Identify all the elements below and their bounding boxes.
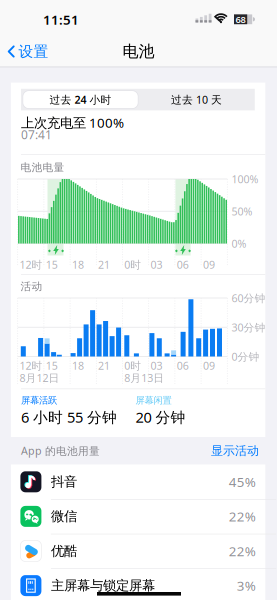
staticText: 0分钟 — [231, 349, 259, 364]
button[interactable]: 设置 — [7, 36, 59, 66]
staticText: 12时 — [19, 358, 42, 373]
staticText: 15 — [46, 257, 58, 272]
staticText: 电池电量 — [20, 161, 64, 174]
staticText: 07:41 — [21, 127, 52, 143]
staticText: 09 — [203, 358, 215, 373]
staticText: 18 — [72, 257, 84, 272]
staticText: 09 — [203, 257, 215, 272]
button[interactable]: 抖音 — [11, 464, 265, 499]
button[interactable]: 显示活动 — [179, 442, 259, 460]
staticText: 6 小时 55 分钟 — [21, 407, 117, 427]
staticText: 60分钟 — [231, 291, 265, 305]
staticText: 20 分钟 — [135, 407, 185, 427]
staticText: 主屏幕与锁定屏幕 — [51, 577, 155, 594]
staticText: 过去 10 天 — [171, 92, 222, 107]
staticText: 上次充电至 100% — [21, 114, 124, 131]
button[interactable]: 主屏幕与锁定屏幕 — [11, 568, 265, 600]
staticText: 优酷 — [51, 543, 77, 559]
staticText: 68 — [235, 13, 245, 25]
staticText: 11:51 — [43, 11, 79, 28]
button[interactable]: 优酷 — [11, 534, 265, 568]
button[interactable]: 过去 10 天 — [139, 89, 255, 110]
staticText: 抖音 — [51, 474, 77, 490]
button[interactable]: 微信 — [11, 499, 265, 534]
staticText: 03 — [150, 358, 162, 373]
staticText: 21 — [98, 358, 110, 373]
staticText: 微信 — [51, 508, 77, 525]
staticText: 06 — [177, 358, 189, 373]
staticText: 电池 — [122, 41, 154, 61]
staticText: 45% — [229, 473, 256, 491]
staticText: 过去 24 小时 — [49, 92, 111, 107]
staticText: 22% — [229, 542, 256, 560]
staticText: 显示活动 — [211, 443, 259, 458]
staticText: 12时 — [19, 257, 42, 272]
staticText: 21 — [98, 257, 110, 272]
staticText: 06 — [177, 257, 189, 272]
staticText: 22% — [229, 507, 256, 525]
staticText: 屏幕活跃 — [21, 395, 57, 406]
button[interactable]: 过去 24 小时 — [23, 91, 138, 109]
staticText: 8月12日 — [19, 371, 59, 385]
staticText: 03 — [150, 257, 162, 272]
staticText: 30分钟 — [231, 320, 265, 334]
staticText: 活动 — [20, 280, 42, 293]
staticText: 设置 — [18, 42, 48, 60]
staticText: 3% — [237, 577, 256, 594]
staticText: 100% — [231, 172, 258, 186]
staticText: 0时 — [124, 358, 141, 373]
staticText: 18 — [72, 358, 84, 373]
staticText: 8月13日 — [124, 371, 164, 385]
staticText: App 的电池用量 — [21, 444, 100, 458]
staticText: 50% — [231, 204, 252, 218]
staticText: 0% — [231, 236, 246, 251]
staticText: 15 — [46, 358, 58, 373]
staticText: 屏幕闲置 — [135, 395, 171, 406]
staticText: 0时 — [124, 257, 141, 272]
